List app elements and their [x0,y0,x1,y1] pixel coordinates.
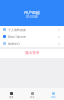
button[interactable]: 退出登录 [0,49,64,58]
staticText: 用户昵称 [24,10,40,15]
staticText: 帮助中心 [8,42,20,46]
button[interactable]: 首页 [0,88,22,100]
staticText: 退出登录 [25,51,40,56]
button[interactable]: 我的 [43,88,64,100]
staticText: 我的订单记录 [8,35,26,39]
button[interactable]: 个人资料设置 [0,26,64,33]
staticText: 我的 [51,96,56,99]
staticText: 首页 [9,96,14,99]
button[interactable]: 我的订单记录 [0,33,64,40]
staticText: ID:10086 [26,15,38,19]
staticText: 个人资料设置 [8,28,26,32]
staticText: 服务 [30,96,35,99]
button[interactable]: 服务 [22,88,43,100]
button[interactable]: 帮助中心 [0,40,64,47]
